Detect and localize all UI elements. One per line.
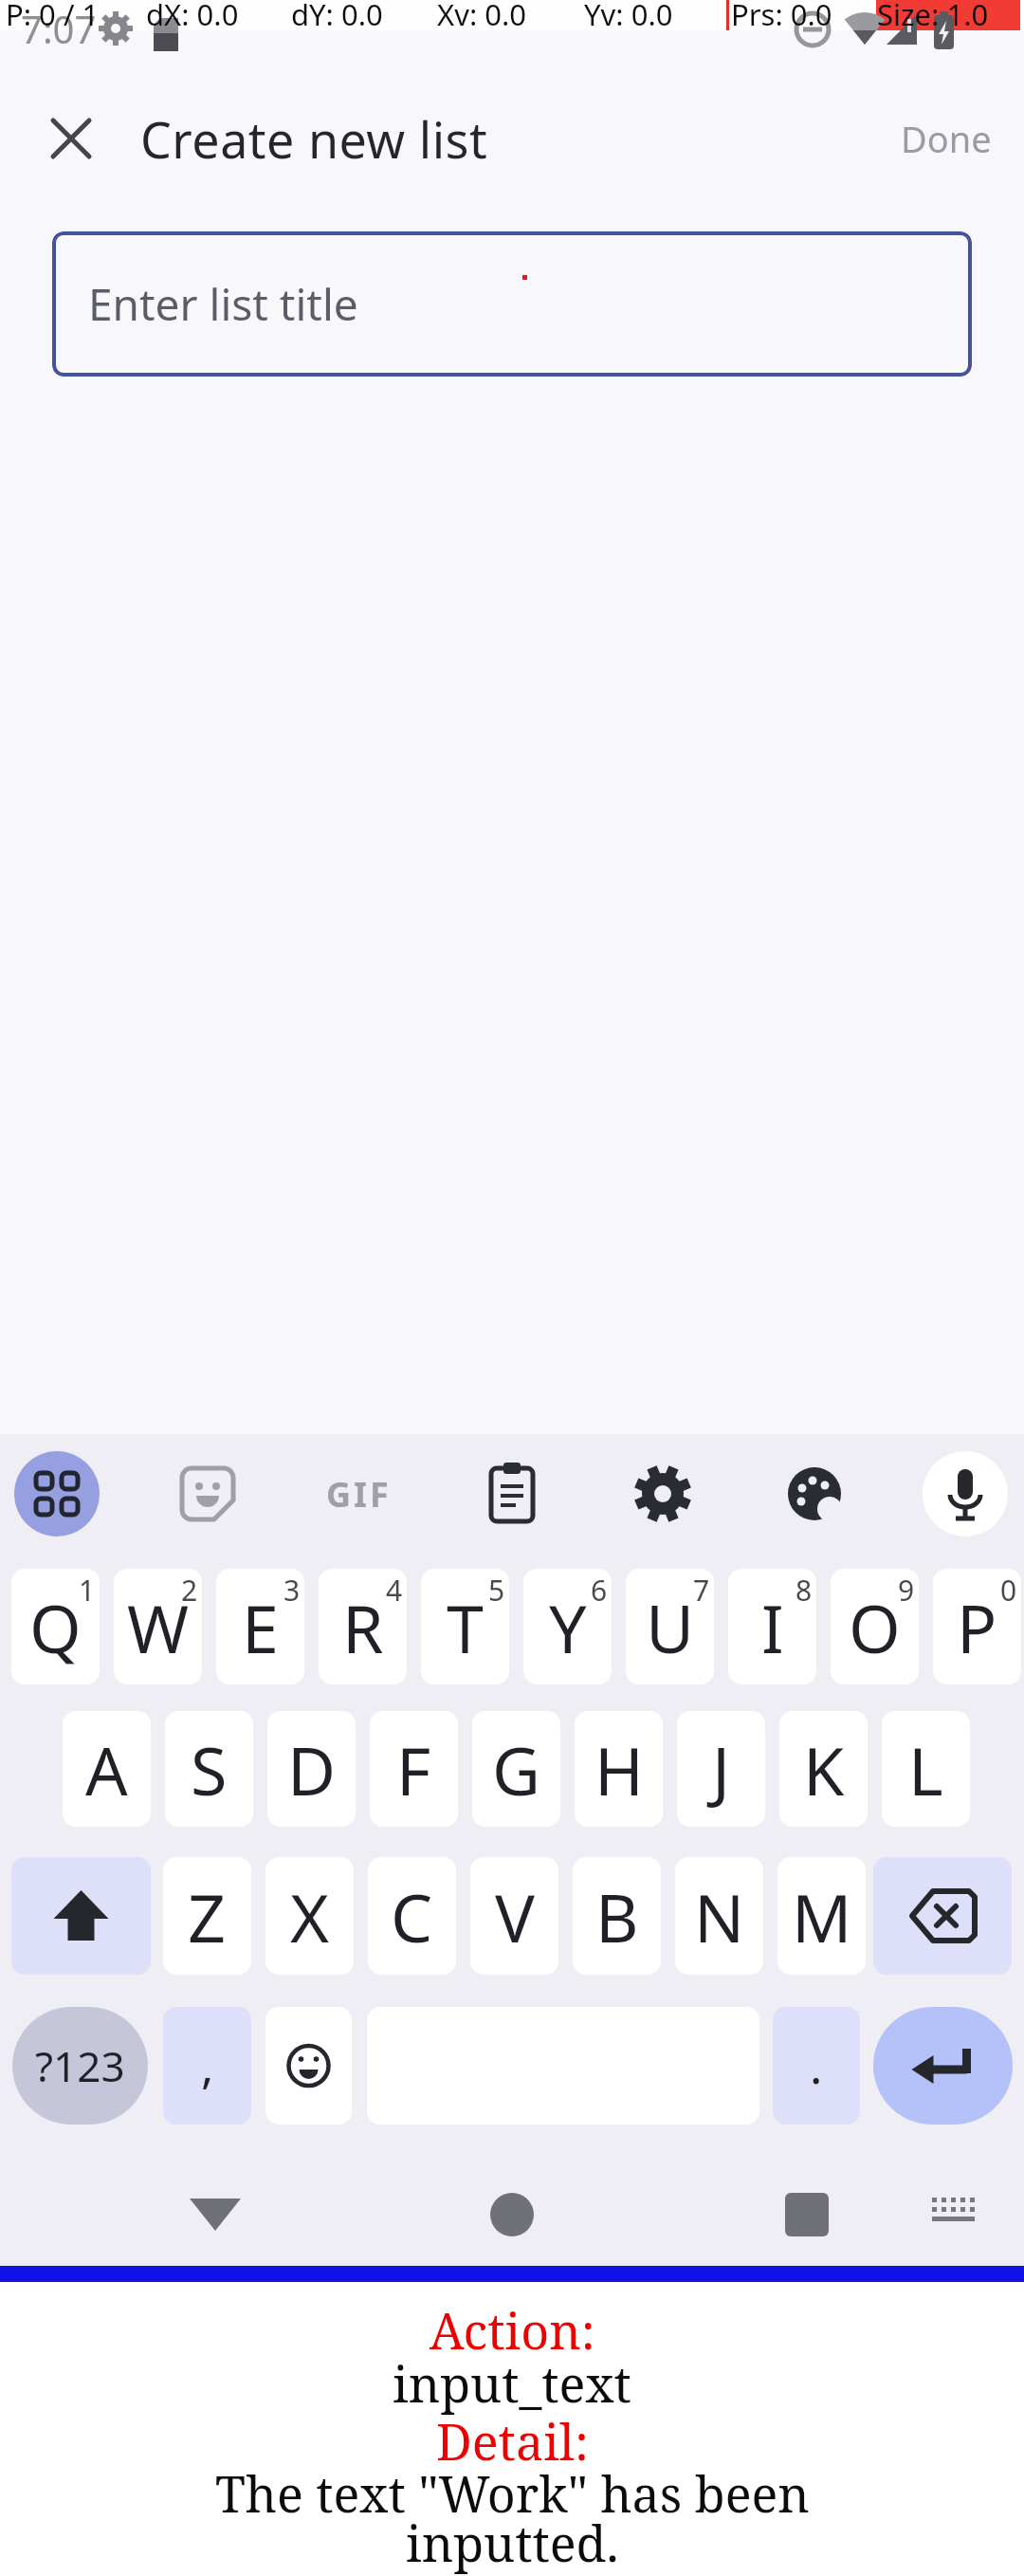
button[interactable]: M: [777, 1857, 866, 1975]
staticText: B: [595, 1871, 639, 1961]
button[interactable]: N: [675, 1857, 763, 1975]
staticText: 9: [898, 1571, 915, 1610]
button[interactable]: Done: [891, 104, 1005, 173]
button[interactable]: [773, 2007, 860, 2125]
staticText: 6: [591, 1571, 608, 1610]
staticText: J: [712, 1724, 731, 1814]
button[interactable]: I: [728, 1569, 816, 1684]
staticText: .: [810, 2033, 823, 2098]
staticText: L: [908, 1724, 943, 1814]
button[interactable]: X: [265, 1857, 354, 1975]
button[interactable]: Z: [163, 1857, 251, 1975]
button[interactable]: [14, 1451, 100, 1536]
staticText: 7:07: [21, 3, 97, 54]
button[interactable]: [45, 112, 98, 165]
button[interactable]: W: [114, 1569, 202, 1684]
staticText: 4: [386, 1571, 403, 1610]
staticText: 2: [181, 1571, 198, 1610]
button[interactable]: [12, 2007, 148, 2125]
staticText: Xv: 0.0: [437, 0, 527, 34]
staticText: C: [391, 1871, 433, 1961]
button[interactable]: F: [370, 1711, 458, 1827]
staticText: Create new list: [140, 105, 488, 173]
staticText: The text "Work" has been: [215, 2459, 810, 2527]
staticText: E: [242, 1582, 279, 1672]
staticText: dX: 0.0: [146, 0, 239, 34]
button[interactable]: P: [933, 1569, 1021, 1684]
button[interactable]: [873, 1857, 1012, 1975]
staticText: M: [792, 1871, 852, 1961]
button[interactable]: C: [368, 1857, 456, 1975]
button[interactable]: H: [575, 1711, 663, 1827]
staticText: 5: [488, 1571, 505, 1610]
staticText: 8: [795, 1571, 813, 1610]
button[interactable]: Enter list title: [52, 231, 972, 377]
button[interactable]: K: [779, 1711, 868, 1827]
button[interactable]: D: [267, 1711, 356, 1827]
button[interactable]: E: [216, 1569, 304, 1684]
staticText: P: 0 / 1: [6, 0, 100, 34]
staticText: Action:: [430, 2296, 595, 2364]
button[interactable]: [165, 1451, 250, 1536]
button[interactable]: [923, 1451, 1008, 1536]
button[interactable]: [163, 2007, 251, 2125]
staticText: Z: [188, 1871, 227, 1961]
button[interactable]: [873, 2007, 1013, 2125]
staticText: dY: 0.0: [291, 0, 383, 34]
staticText: D: [287, 1724, 337, 1814]
button[interactable]: Q: [11, 1569, 100, 1684]
staticText: P: [957, 1582, 997, 1672]
staticText: ,: [201, 2033, 214, 2098]
staticText: R: [342, 1582, 384, 1672]
button[interactable]: [479, 2181, 545, 2248]
staticText: 3: [283, 1571, 301, 1610]
staticText: 1: [79, 1571, 96, 1610]
staticText: W: [127, 1582, 190, 1672]
button[interactable]: GIF: [316, 1451, 401, 1536]
button[interactable]: O: [831, 1569, 919, 1684]
staticText: Y: [549, 1582, 587, 1672]
button[interactable]: B: [573, 1857, 661, 1975]
staticText: GIF: [326, 1471, 392, 1518]
staticText: Yv: 0.0: [584, 0, 673, 34]
staticText: 7: [693, 1571, 710, 1610]
staticText: T: [447, 1582, 484, 1672]
staticText: I: [761, 1582, 784, 1672]
staticText: input_text: [393, 2349, 631, 2417]
staticText: G: [492, 1724, 540, 1814]
staticText: Enter list title: [88, 274, 358, 334]
button[interactable]: R: [319, 1569, 407, 1684]
staticText: ?123: [35, 2037, 125, 2094]
staticText: inputted.: [406, 2509, 619, 2576]
staticText: S: [191, 1724, 228, 1814]
button[interactable]: [182, 2181, 248, 2248]
button[interactable]: U: [626, 1569, 714, 1684]
staticText: U: [646, 1582, 695, 1672]
button[interactable]: J: [677, 1711, 765, 1827]
button[interactable]: V: [470, 1857, 558, 1975]
button[interactable]: [620, 1451, 705, 1536]
button[interactable]: L: [882, 1711, 970, 1827]
button[interactable]: [924, 2186, 985, 2243]
button[interactable]: [11, 1857, 151, 1975]
staticText: N: [694, 1871, 745, 1961]
button[interactable]: S: [165, 1711, 253, 1827]
button[interactable]: Y: [523, 1569, 612, 1684]
button[interactable]: [774, 2181, 840, 2248]
staticText: A: [85, 1724, 128, 1814]
staticText: F: [396, 1724, 431, 1814]
button[interactable]: A: [63, 1711, 151, 1827]
staticText: Q: [29, 1582, 82, 1672]
button[interactable]: [772, 1451, 857, 1536]
staticText: 0: [1000, 1571, 1017, 1610]
button[interactable]: [469, 1451, 555, 1536]
staticText: Size: 1.0: [877, 0, 989, 34]
staticText: X: [290, 1871, 330, 1961]
button[interactable]: [265, 2007, 352, 2125]
button[interactable]: T: [421, 1569, 509, 1684]
staticText: O: [849, 1582, 901, 1672]
button[interactable]: G: [472, 1711, 560, 1827]
staticText: Prs: 0.0: [731, 0, 832, 34]
staticText: K: [803, 1724, 845, 1814]
